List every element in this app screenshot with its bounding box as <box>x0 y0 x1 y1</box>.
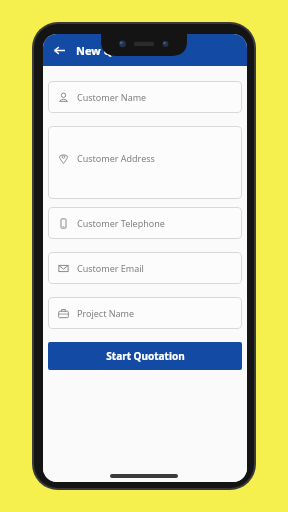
staticText: Customer Address <box>77 152 155 164</box>
button[interactable]: Start Quotation <box>48 342 242 370</box>
button[interactable]: Customer Name <box>48 81 242 113</box>
staticText: Project Name <box>77 307 135 319</box>
staticText: Customer Email <box>77 262 144 274</box>
button[interactable]: Customer Address <box>48 126 242 199</box>
staticText: Customer Name <box>77 91 147 103</box>
button[interactable]: Back <box>48 39 70 61</box>
button[interactable]: Project Name <box>48 297 242 329</box>
button[interactable]: Customer Email <box>48 252 242 284</box>
staticText: Start Quotation <box>106 349 185 363</box>
button[interactable]: Customer Telephone <box>48 207 242 239</box>
staticText: Customer Telephone <box>77 217 165 229</box>
staticText: New Quotation <box>76 43 160 58</box>
